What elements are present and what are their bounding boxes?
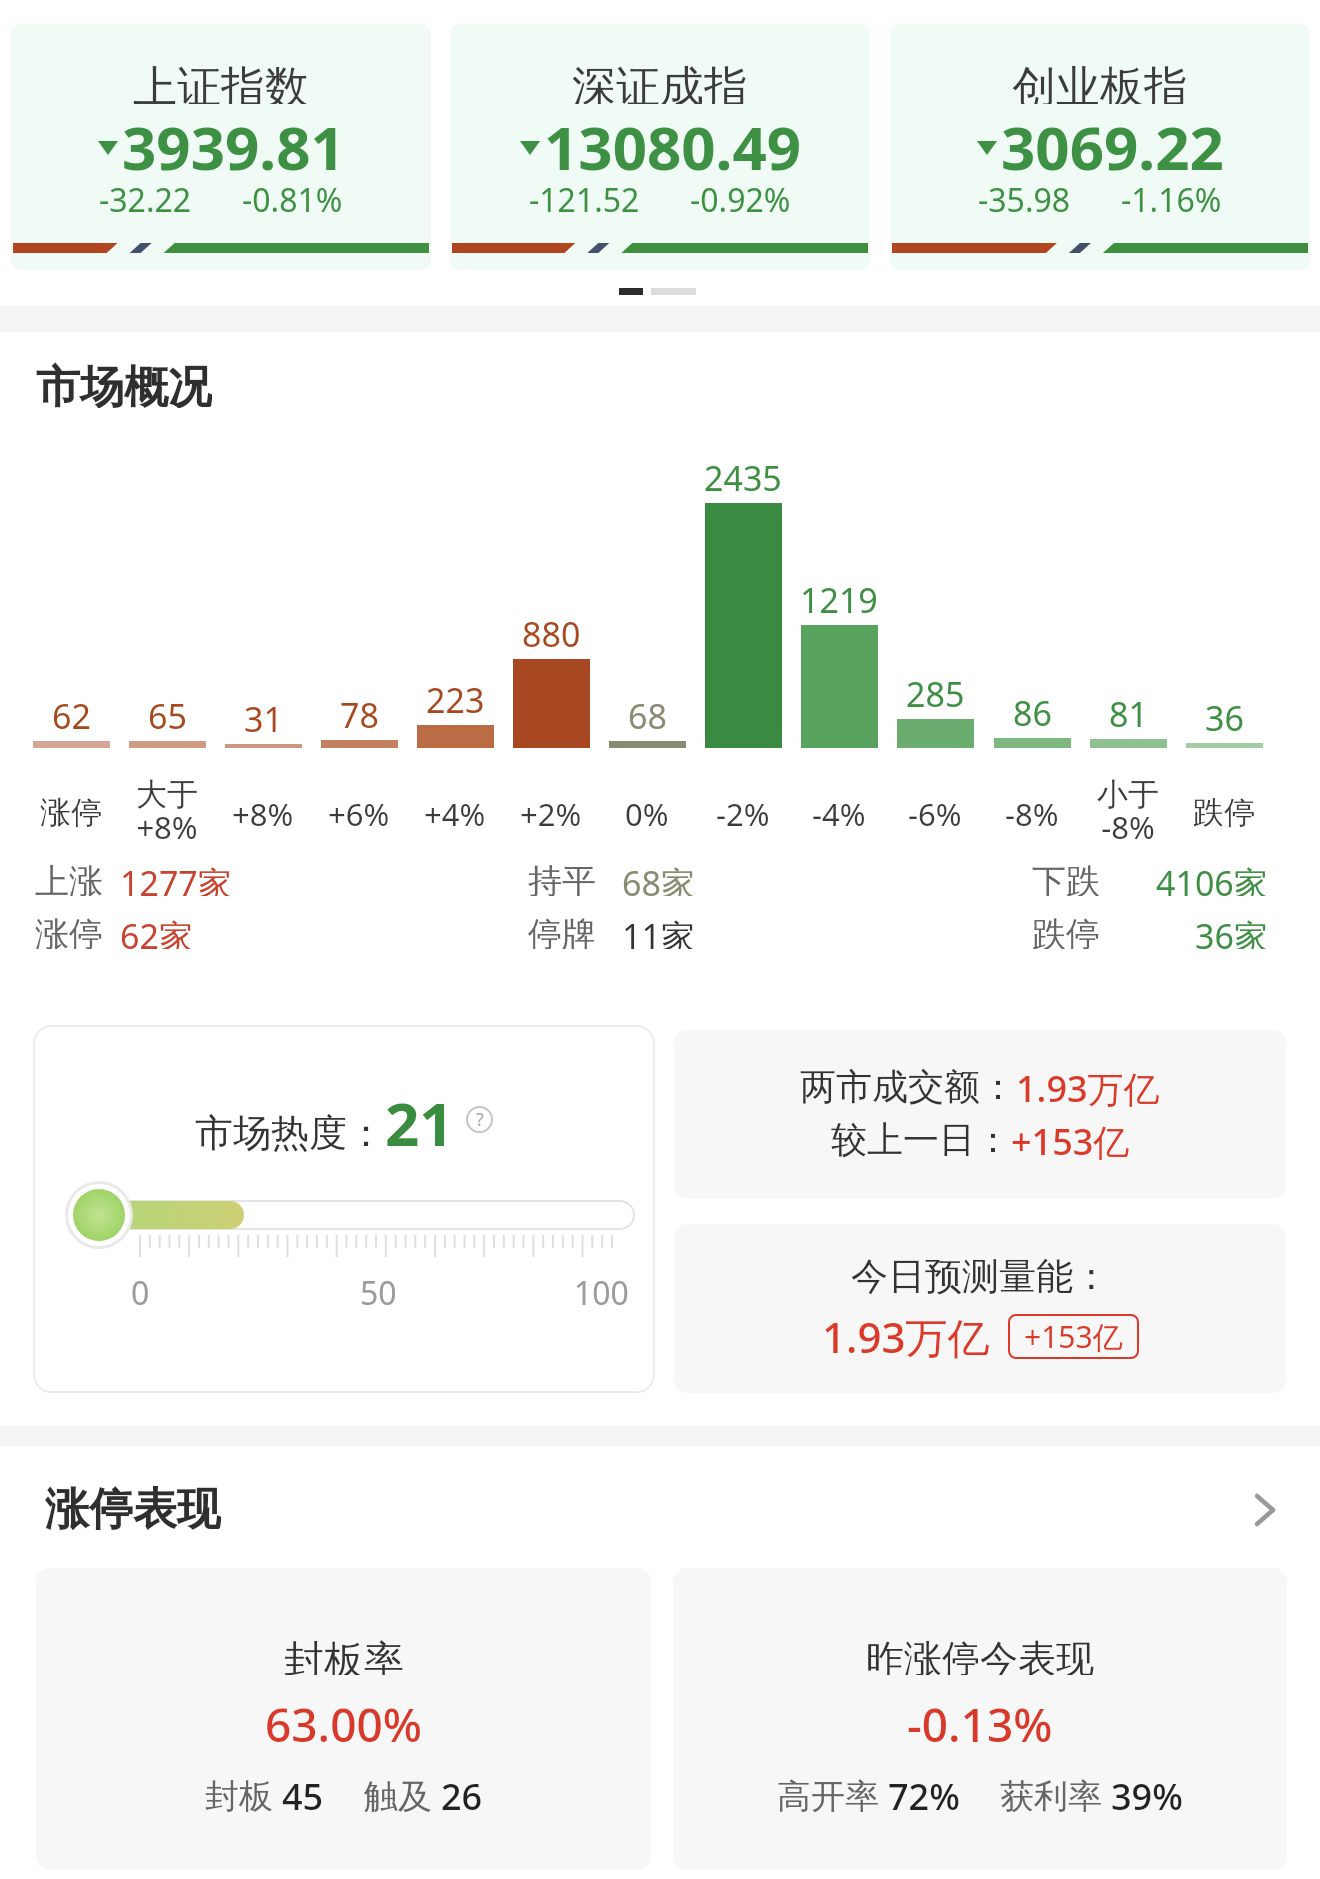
staticText: 285 [906,671,965,711]
staticText: 1.93万亿 [822,1308,990,1365]
staticText: 3939.81 [122,106,345,188]
staticText: 65 [148,693,187,733]
staticText: 持平 [528,860,596,896]
staticText: 涨停 [40,793,102,829]
button[interactable]: 封板率 [36,1568,651,1870]
staticText: 涨停 [35,913,103,949]
staticText: 223 [426,677,485,717]
staticText: 880 [522,611,581,651]
staticText: +4% [424,793,486,829]
staticText: 68家 [622,860,695,896]
staticText: 31 [244,696,283,736]
staticText: 小于 -8% [1097,775,1159,847]
staticText: 创业板指 [1012,60,1188,104]
staticText: 上涨 [35,860,103,896]
staticText: 36家 [1195,913,1268,949]
staticText: 1277家 [120,860,232,896]
staticText: 50 [360,1271,397,1311]
staticText: 两市成交额： [800,1064,1016,1109]
staticText: -121.52 [529,178,640,222]
staticText: 昨涨停今表现 [866,1635,1094,1675]
staticText: -0.13% [907,1693,1053,1756]
staticText: 深证成指 [572,60,748,104]
staticText: 触及 [364,1772,441,1812]
staticText: 1.93万亿 [1016,1064,1160,1113]
staticText: 市场热度： [195,1109,385,1157]
staticText: 2435 [704,455,782,495]
staticText: 13080.49 [544,106,802,188]
button[interactable]: 创业板指 [890,24,1310,270]
staticText: 涨停表现 [45,1482,221,1530]
staticText: +2% [520,793,582,829]
staticText: 高开率 [777,1772,888,1812]
staticText: 封板 [205,1772,282,1812]
staticText: -32.22 [99,178,192,222]
staticText: 较上一日： [831,1117,1011,1162]
staticText: 11家 [622,913,695,949]
staticText: -4% [812,793,866,829]
staticText: -1.16% [1121,178,1222,222]
staticText: 39% [1111,1772,1183,1812]
button[interactable]: 两市成交额： [674,1030,1286,1199]
staticText: +153亿 [1011,1117,1130,1166]
staticText: 上证指数 [133,60,309,104]
staticText: 72% [888,1772,960,1812]
staticText: 26 [441,1772,483,1812]
staticText: 3069.22 [1001,106,1224,188]
staticText: 下跌 [1032,860,1100,896]
staticText: 100 [574,1271,629,1311]
staticText: +8% [232,793,294,829]
staticText: 停牌 [528,913,596,949]
staticText: 0% [625,793,669,829]
staticText: +6% [328,793,390,829]
staticText: 81 [1109,691,1148,731]
staticText: 今日预测量能： [851,1253,1110,1300]
staticText: +153亿 [1024,1316,1123,1357]
staticText: -8% [1005,793,1059,829]
staticText: ? [476,1107,484,1132]
staticText: 跌停 [1032,913,1100,949]
staticText: 跌停 [1193,793,1255,829]
staticText: 62家 [120,913,193,949]
staticText: 0 [131,1271,150,1311]
staticText: 45 [282,1772,324,1812]
staticText: 62 [52,693,91,733]
button[interactable]: 深证成指 [450,24,870,270]
staticText: 63.00% [265,1693,422,1756]
staticText: -0.92% [690,178,791,222]
staticText: 获利率 [1000,1772,1111,1812]
staticText: -2% [716,793,770,829]
staticText: 36 [1205,695,1244,735]
staticText: 封板率 [284,1635,404,1675]
staticText: 86 [1013,690,1052,730]
button[interactable] [1254,1494,1276,1526]
staticText: -6% [908,793,962,829]
staticText: 21 [385,1082,454,1146]
staticText: 市场概况 [36,360,212,408]
button[interactable]: 昨涨停今表现 [673,1568,1287,1870]
button[interactable]: 市场热度： [33,1025,655,1393]
staticText: 4106家 [1156,860,1268,896]
staticText: 1219 [800,577,878,617]
staticText: 78 [340,692,379,732]
staticText: 68 [628,693,667,733]
button[interactable]: 上证指数 [11,24,431,270]
button[interactable]: 今日预测量能： [674,1224,1286,1393]
staticText: -0.81% [242,178,343,222]
staticText: 大于 +8% [136,775,198,847]
staticText: -35.98 [978,178,1071,222]
